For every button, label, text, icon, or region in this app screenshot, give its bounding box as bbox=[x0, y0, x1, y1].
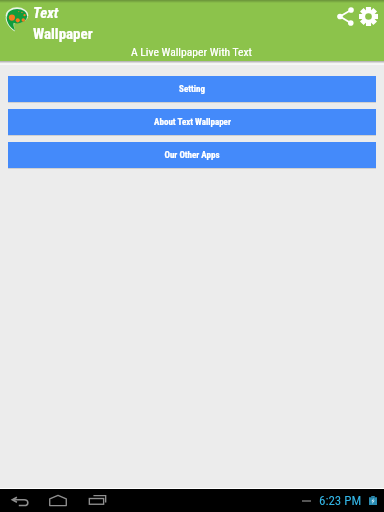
staticText: Text bbox=[33, 4, 59, 22]
staticText: Our Other Apps bbox=[164, 150, 220, 161]
button[interactable]: Back bbox=[1, 489, 39, 512]
staticText: About Text Wallpaper bbox=[154, 117, 231, 128]
button[interactable]: Home bbox=[39, 489, 77, 512]
button[interactable]: Setting bbox=[8, 76, 376, 102]
staticText: Wallpaper bbox=[33, 25, 93, 43]
staticText: 6:23 PM bbox=[319, 493, 362, 508]
button[interactable]: Settings bbox=[355, 0, 382, 32]
button[interactable]: About Text Wallpaper bbox=[8, 109, 376, 135]
staticText: Setting bbox=[179, 84, 205, 95]
staticText: A Live Wallpaper With Text bbox=[131, 45, 253, 59]
button[interactable]: Our Other Apps bbox=[8, 142, 376, 168]
button[interactable]: Recents bbox=[78, 489, 116, 512]
button[interactable]: Share bbox=[331, 0, 360, 32]
